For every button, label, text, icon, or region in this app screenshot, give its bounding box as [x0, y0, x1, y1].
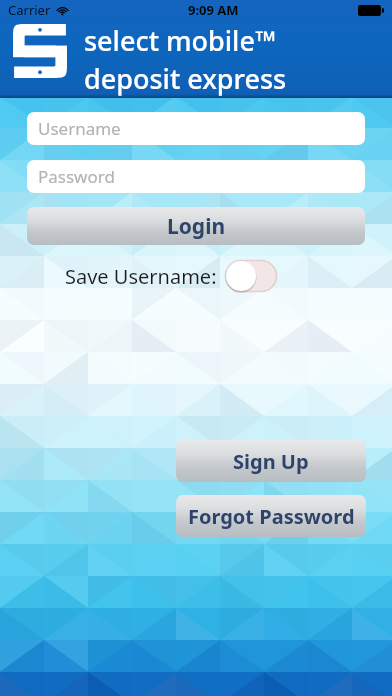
button[interactable]: Username	[27, 112, 365, 145]
button[interactable]: Password	[27, 160, 365, 193]
staticText: Sign Up	[233, 448, 309, 475]
staticText: Password	[38, 165, 115, 188]
staticText: Login	[167, 212, 226, 241]
staticText: select mobile™	[84, 22, 276, 59]
button[interactable]: Login	[27, 207, 365, 245]
staticText: deposit express	[84, 60, 287, 97]
button[interactable]: Save Username toggle	[225, 260, 277, 292]
staticText: Username	[38, 117, 121, 140]
button[interactable]: Sign Up	[176, 440, 366, 482]
staticText: Save Username:	[65, 263, 217, 290]
button[interactable]: Forgot Password	[176, 495, 366, 537]
staticText: 9:09 AM	[188, 1, 239, 19]
staticText: Forgot Password	[188, 503, 355, 530]
staticText: Carrier	[8, 1, 51, 19]
